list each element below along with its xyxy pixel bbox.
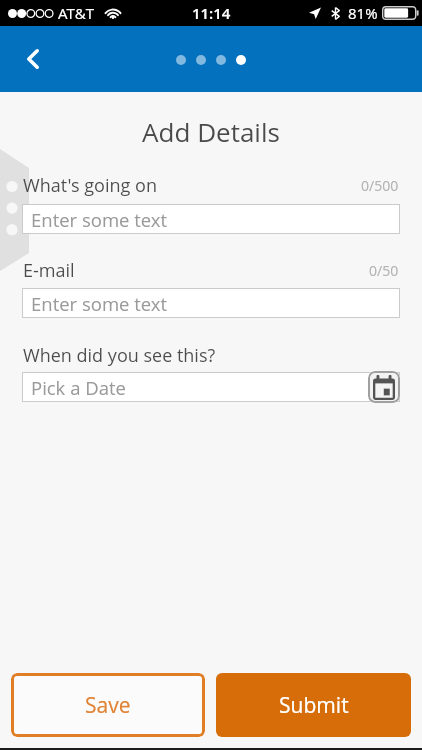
- staticText: 81%: [348, 3, 378, 23]
- button[interactable]: Submit: [216, 673, 411, 737]
- button[interactable]: Back: [9, 35, 57, 83]
- staticText: AT&T: [58, 3, 94, 23]
- staticText: What's going on: [23, 173, 157, 198]
- staticText: Enter some text: [31, 207, 168, 232]
- button[interactable]: Pick a Date: [22, 372, 400, 402]
- staticText: Save: [85, 691, 131, 720]
- staticText: E-mail: [23, 258, 75, 283]
- button[interactable]: Enter some text: [22, 288, 400, 318]
- button[interactable]: Enter some text: [22, 204, 400, 234]
- staticText: Add Details: [0, 114, 422, 149]
- staticText: When did you see this?: [23, 343, 216, 368]
- other: Open navigation drawer: [0, 0, 422, 750]
- staticText: 0/50: [369, 261, 399, 280]
- button[interactable]: Pick a date: [368, 371, 400, 403]
- staticText: 11:14: [192, 3, 231, 23]
- staticText: Submit: [279, 691, 349, 720]
- button[interactable]: Save: [11, 673, 205, 737]
- staticText: Enter some text: [31, 291, 168, 316]
- staticText: 0/500: [361, 176, 399, 195]
- staticText: Pick a Date: [31, 375, 126, 400]
